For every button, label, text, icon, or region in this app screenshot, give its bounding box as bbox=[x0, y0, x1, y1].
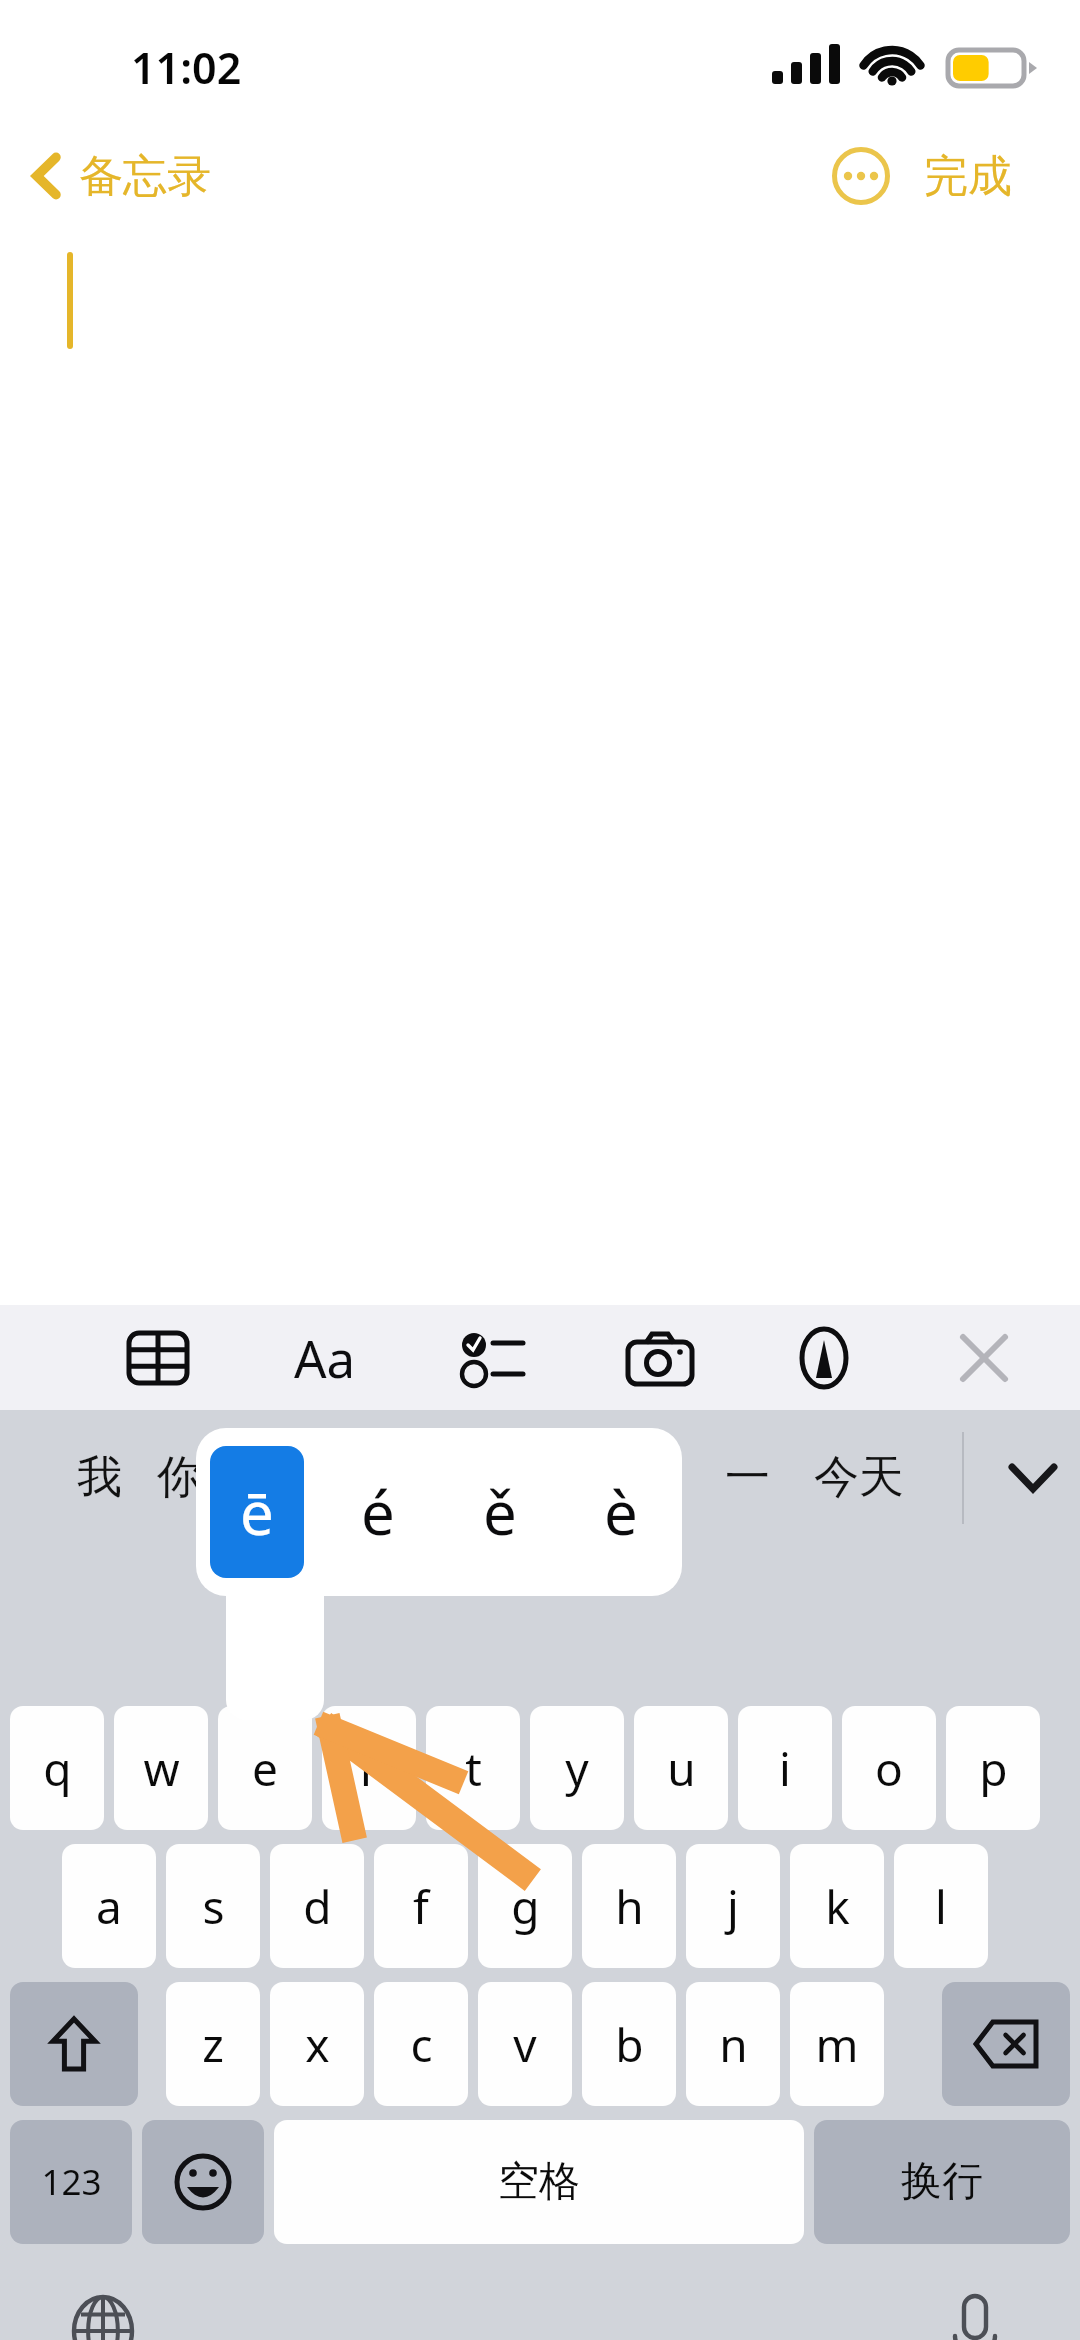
staticText: n bbox=[719, 2013, 748, 2076]
button[interactable]: 今天 bbox=[804, 1410, 914, 1545]
staticText: 备忘录 bbox=[79, 149, 211, 204]
staticText: ē bbox=[240, 1471, 274, 1553]
staticText: z bbox=[202, 2013, 224, 2076]
button[interactable]: v bbox=[478, 1982, 572, 2106]
button[interactable]: q bbox=[10, 1706, 104, 1830]
staticText: u bbox=[667, 1737, 696, 1800]
staticText: m bbox=[815, 2013, 859, 2076]
button[interactable]: 一 bbox=[692, 1410, 802, 1545]
button[interactable]: r bbox=[322, 1706, 416, 1830]
staticText: 你 bbox=[157, 1449, 202, 1506]
button[interactable]: s bbox=[166, 1844, 260, 1968]
staticText: y bbox=[565, 1737, 589, 1800]
button[interactable]: Text format bbox=[273, 1305, 377, 1410]
button[interactable]: Switch keyboard bbox=[50, 2278, 156, 2340]
staticText: é bbox=[361, 1471, 395, 1553]
staticText: v bbox=[513, 2013, 537, 2076]
button[interactable]: Shift bbox=[10, 1982, 138, 2106]
button[interactable]: l bbox=[894, 1844, 988, 1968]
button[interactable]: Markup bbox=[772, 1305, 876, 1410]
button[interactable]: m bbox=[790, 1982, 884, 2106]
button[interactable]: More options bbox=[818, 130, 904, 222]
staticText: è bbox=[604, 1471, 638, 1553]
staticText: s bbox=[202, 1875, 225, 1938]
button[interactable]: y bbox=[530, 1706, 624, 1830]
button[interactable]: 123 bbox=[10, 2120, 132, 2244]
button[interactable]: p bbox=[946, 1706, 1040, 1830]
button[interactable]: Delete bbox=[942, 1982, 1070, 2106]
staticText: o bbox=[875, 1737, 903, 1800]
staticText: t bbox=[465, 1737, 482, 1800]
button[interactable]: c bbox=[374, 1982, 468, 2106]
staticText: r bbox=[360, 1737, 379, 1800]
button[interactable]: Close keyboard bbox=[932, 1305, 1036, 1410]
staticText: a bbox=[96, 1875, 122, 1938]
button[interactable]: z bbox=[166, 1982, 260, 2106]
staticText: 完成 bbox=[924, 149, 1012, 204]
button[interactable]: e bbox=[218, 1706, 312, 1830]
button[interactable]: f bbox=[374, 1844, 468, 1968]
staticText: 今天 bbox=[814, 1449, 904, 1506]
staticText: d bbox=[303, 1875, 332, 1938]
button[interactable]: j bbox=[686, 1844, 780, 1968]
button[interactable]: é bbox=[331, 1446, 425, 1578]
button[interactable]: b bbox=[582, 1982, 676, 2106]
staticText: x bbox=[305, 2013, 330, 2076]
button[interactable]: u bbox=[634, 1706, 728, 1830]
button[interactable]: t bbox=[426, 1706, 520, 1830]
button[interactable]: Emoji keyboard bbox=[142, 2120, 264, 2244]
button[interactable]: Dictation bbox=[922, 2278, 1028, 2340]
button[interactable]: Hide suggestions bbox=[985, 1410, 1080, 1545]
staticText: Aa bbox=[294, 1323, 356, 1392]
button[interactable]: 备忘录 bbox=[18, 130, 225, 222]
button[interactable]: w bbox=[114, 1706, 208, 1830]
button[interactable]: Insert table bbox=[106, 1305, 210, 1410]
staticText: g bbox=[511, 1875, 540, 1938]
button[interactable]: i bbox=[738, 1706, 832, 1830]
staticText: c bbox=[410, 2013, 433, 2076]
button[interactable]: ě bbox=[453, 1446, 547, 1578]
button[interactable]: k bbox=[790, 1844, 884, 1968]
button[interactable]: 你 bbox=[124, 1410, 234, 1545]
staticText: 123 bbox=[41, 2158, 102, 2206]
button[interactable]: Camera bbox=[608, 1305, 712, 1410]
staticText: 我 bbox=[77, 1449, 122, 1506]
staticText: k bbox=[825, 1875, 850, 1938]
staticText: 一 bbox=[725, 1449, 770, 1506]
button[interactable]: n bbox=[686, 1982, 780, 2106]
staticText: p bbox=[979, 1737, 1008, 1800]
button[interactable]: ē bbox=[210, 1446, 304, 1578]
button[interactable]: 换行 bbox=[814, 2120, 1070, 2244]
staticText: 11:02 bbox=[131, 38, 242, 97]
button[interactable]: a bbox=[62, 1844, 156, 1968]
staticText: i bbox=[779, 1737, 791, 1800]
staticText: j bbox=[727, 1875, 739, 1938]
staticText: b bbox=[615, 2013, 644, 2076]
staticText: ě bbox=[483, 1471, 517, 1553]
staticText: e bbox=[252, 1737, 278, 1800]
staticText: l bbox=[935, 1875, 947, 1938]
staticText: w bbox=[143, 1737, 180, 1800]
button[interactable]: d bbox=[270, 1844, 364, 1968]
button[interactable]: è bbox=[574, 1446, 668, 1578]
button[interactable]: g bbox=[478, 1844, 572, 1968]
staticText: q bbox=[43, 1737, 72, 1800]
button[interactable]: h bbox=[582, 1844, 676, 1968]
button[interactable]: 空格 bbox=[274, 2120, 804, 2244]
button[interactable]: 完成 bbox=[912, 130, 1024, 222]
staticText: 空格 bbox=[498, 2156, 580, 2208]
staticText: f bbox=[413, 1875, 429, 1938]
button[interactable]: o bbox=[842, 1706, 936, 1830]
button[interactable]: Checklist bbox=[441, 1305, 545, 1410]
button[interactable]: 我 bbox=[44, 1410, 154, 1545]
staticText: 换行 bbox=[901, 2156, 983, 2208]
button[interactable]: x bbox=[270, 1982, 364, 2106]
staticText: h bbox=[615, 1875, 644, 1938]
